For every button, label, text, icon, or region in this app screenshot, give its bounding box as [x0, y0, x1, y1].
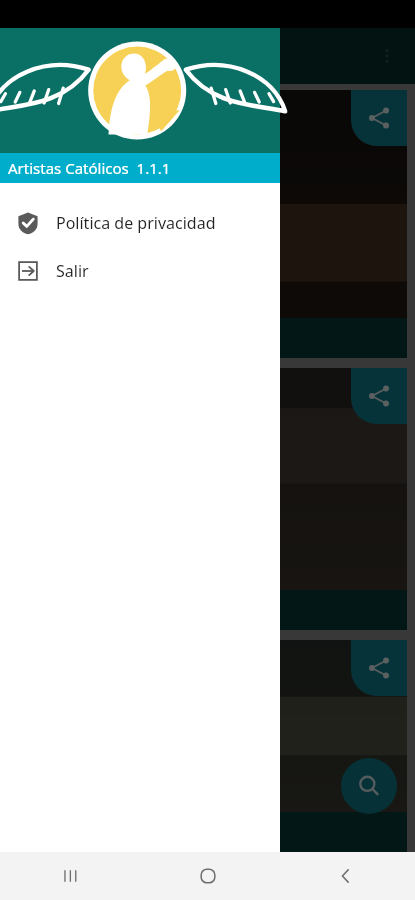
staticText: Artistas Católicos 1.1.1: [8, 158, 171, 178]
button[interactable]: Home: [139, 852, 277, 900]
button[interactable]: Search: [341, 758, 397, 814]
button[interactable]: Share: [351, 90, 407, 146]
button[interactable]: Back: [277, 852, 415, 900]
button[interactable]: Share: [351, 368, 407, 424]
button[interactable]: Share: [8, 90, 407, 358]
button[interactable]: Share: [351, 640, 407, 696]
staticText: Política de privacidad: [56, 212, 216, 234]
button[interactable]: Share: [8, 368, 407, 630]
button[interactable]: Política de privacidad: [0, 199, 280, 247]
button[interactable]: Share: [8, 640, 407, 852]
button[interactable]: Salir: [0, 247, 280, 295]
button[interactable]: Recent apps: [0, 852, 139, 900]
staticText: Salir: [56, 260, 89, 282]
